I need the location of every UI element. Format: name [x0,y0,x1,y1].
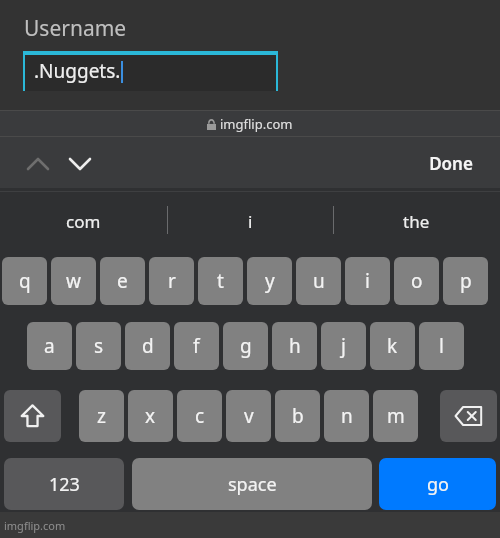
staticText: n [341,403,353,429]
staticText: i [365,268,370,294]
staticText: j [341,333,346,359]
button[interactable]: d [125,322,170,370]
staticText: l [439,333,444,359]
staticText: b [292,403,304,429]
staticText: com [66,210,101,233]
button[interactable]: the [333,192,500,250]
button[interactable]: w [51,257,96,305]
staticText: d [142,333,154,359]
button[interactable]: b [275,390,320,442]
staticText: z [97,403,106,429]
button[interactable]: i [345,257,390,305]
button[interactable]: c [177,390,222,442]
button[interactable]: m [373,390,418,442]
staticText: t [217,268,224,294]
staticText: 123 [49,472,80,497]
button[interactable]: l [419,322,464,370]
staticText: a [44,333,55,359]
button[interactable]: .Nuggets. [23,51,278,91]
staticText: p [460,268,472,294]
button[interactable]: x [128,390,173,442]
button[interactable]: 123 [4,458,124,510]
staticText: x [145,403,156,429]
button[interactable]: Previous field [20,148,56,178]
button[interactable]: Shift [4,390,61,442]
button[interactable]: k [370,322,415,370]
button[interactable]: Next field [62,148,98,178]
staticText: c [195,403,205,429]
staticText: i [248,210,253,233]
staticText: f [193,333,200,359]
button[interactable]: Done [420,148,482,178]
staticText: imgflip.com [4,518,66,533]
staticText: o [411,268,423,294]
button[interactable]: n [324,390,369,442]
staticText: h [289,333,301,359]
staticText: y [265,268,275,294]
staticText: go [427,472,449,497]
button[interactable]: o [394,257,439,305]
button[interactable]: e [100,257,145,305]
staticText: Username [24,14,127,43]
staticText: r [168,268,176,294]
button[interactable]: u [296,257,341,305]
staticText: v [244,403,254,429]
button[interactable]: go [379,458,496,510]
staticText: space [228,472,277,497]
button[interactable]: a [27,322,72,370]
button[interactable]: imgflip.com [0,111,500,136]
staticText: Done [429,152,473,175]
button[interactable]: y [247,257,292,305]
staticText: .Nuggets. [34,58,121,84]
staticText: g [240,333,252,359]
staticText: w [66,268,81,294]
staticText: e [117,268,128,294]
button[interactable]: Backspace [440,390,497,442]
button[interactable]: i [167,192,334,250]
staticText: the [403,210,430,233]
staticText: m [387,403,405,429]
staticText: s [94,333,104,359]
button[interactable]: space [132,458,372,510]
button[interactable]: r [149,257,194,305]
button[interactable]: z [79,390,124,442]
button[interactable]: j [321,322,366,370]
staticText: u [313,268,325,294]
staticText: imgflip.com [220,115,293,133]
button[interactable]: p [443,257,488,305]
staticText: q [19,268,31,294]
button[interactable]: q [2,257,47,305]
button[interactable]: v [226,390,271,442]
button[interactable]: com [0,192,167,250]
button[interactable]: f [174,322,219,370]
staticText: k [387,333,398,359]
button[interactable]: h [272,322,317,370]
button[interactable]: g [223,322,268,370]
button[interactable]: s [76,322,121,370]
button[interactable]: t [198,257,243,305]
